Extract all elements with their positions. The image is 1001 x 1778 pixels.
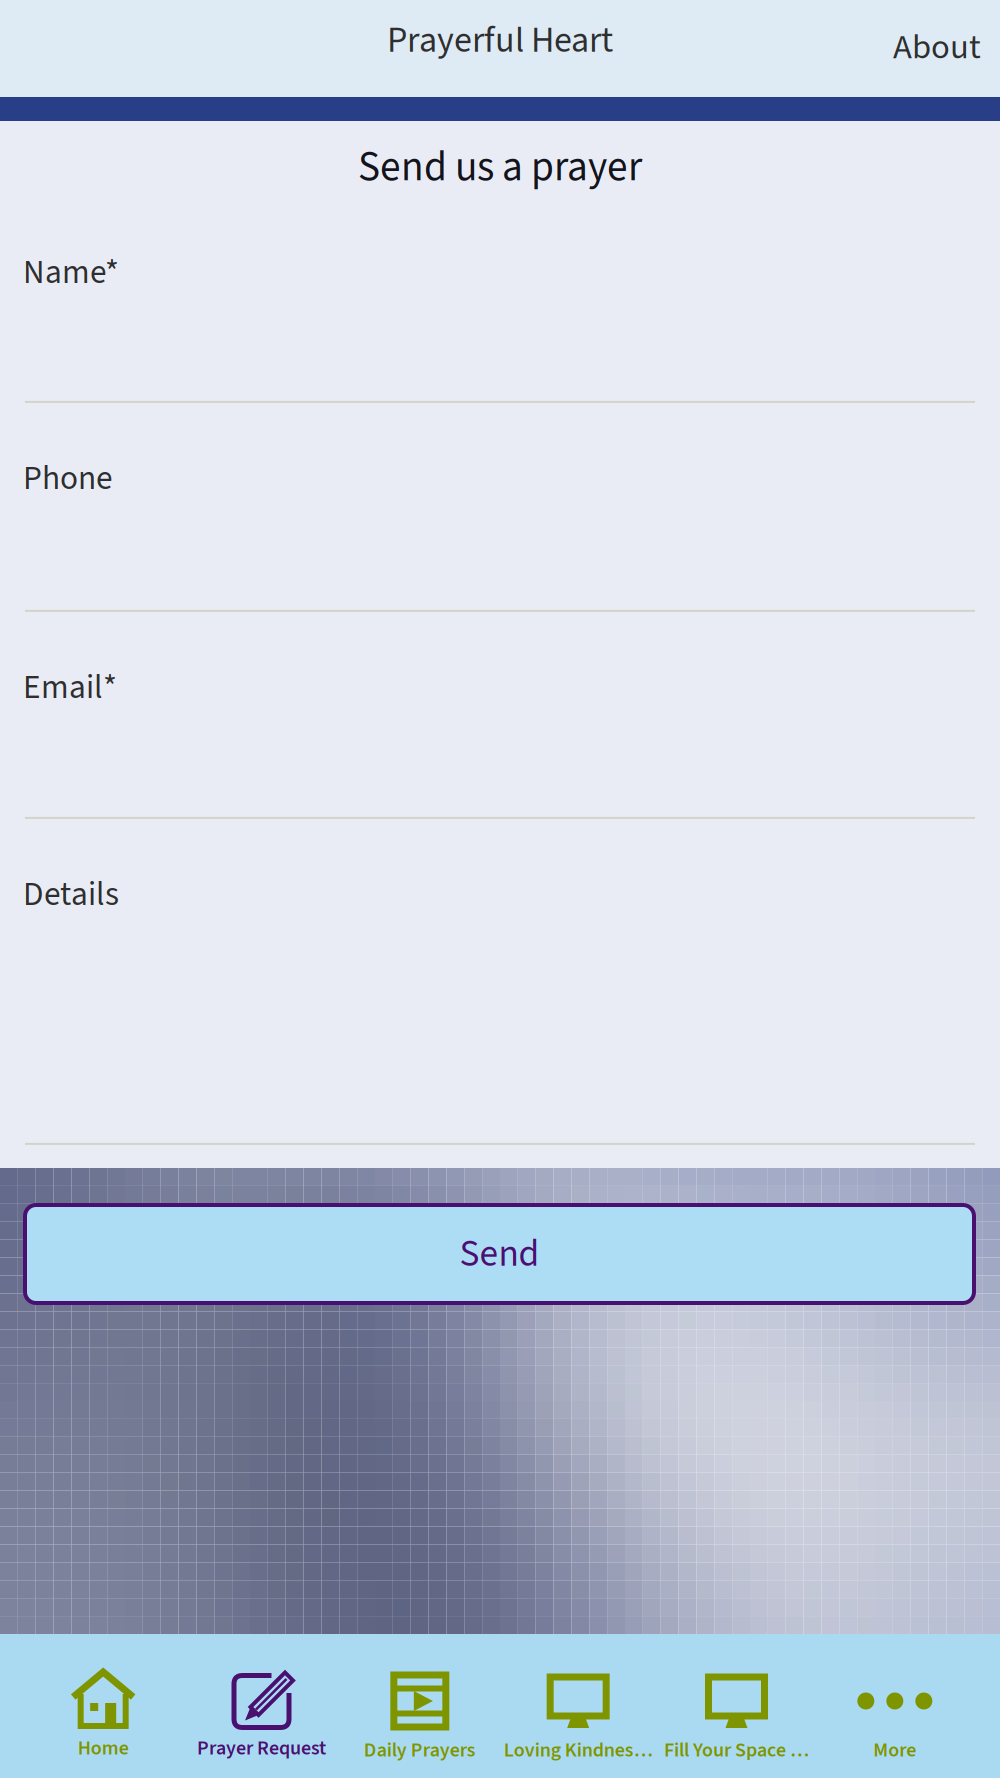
staticText: Prayer Request [197,1734,326,1762]
staticText: Details [23,871,119,918]
button[interactable]: Fill Your Space … [657,1634,816,1778]
staticText: Email* [23,664,117,711]
staticText: About [893,23,981,72]
button[interactable]: More [816,1634,974,1778]
staticText: Prayerful Heart [387,15,613,66]
button[interactable]: Send [0,1168,1000,1303]
button[interactable]: Daily Prayers [341,1634,499,1778]
staticText: Name* [23,249,119,296]
button[interactable]: Loving Kindnes… [499,1634,657,1778]
staticText: Phone [23,455,113,502]
staticText: Loving Kindnes… [504,1736,653,1764]
staticText: Daily Prayers [364,1736,476,1764]
staticText: Home [78,1734,129,1762]
staticText: More [873,1736,916,1764]
button[interactable]: Prayer Request [182,1634,341,1778]
staticText: Send [459,1227,539,1281]
staticText: Fill Your Space … [664,1736,809,1764]
button[interactable]: Home [24,1634,182,1778]
button[interactable]: About [869,8,1000,89]
staticText: Send us a prayer [358,138,642,197]
